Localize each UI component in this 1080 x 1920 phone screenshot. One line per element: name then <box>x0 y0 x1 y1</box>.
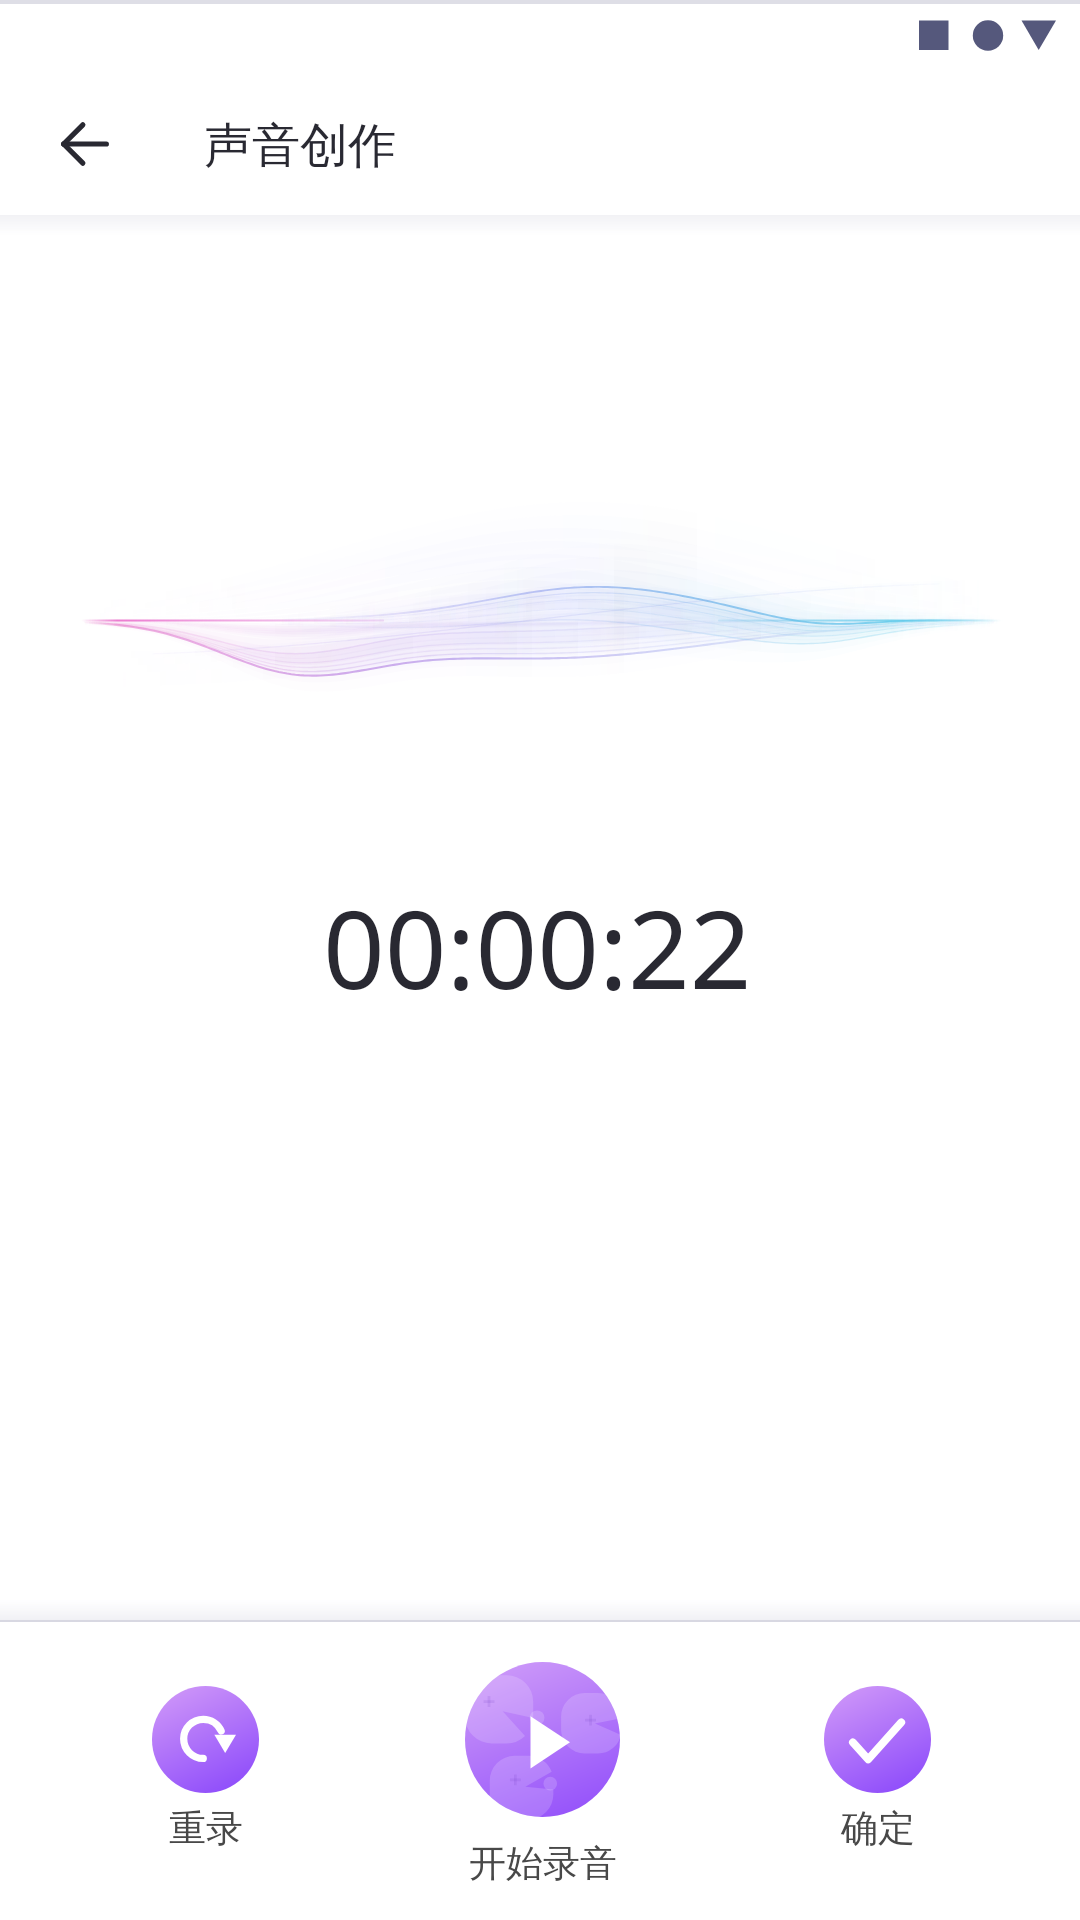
staticText: 确定 <box>841 1805 915 1852</box>
button[interactable]: Confirm <box>824 1686 931 1852</box>
staticText: 重录 <box>169 1805 243 1852</box>
button[interactable]: Start recording <box>465 1662 620 1887</box>
button[interactable]: Re-record <box>152 1686 259 1852</box>
staticText: 00:00:22 <box>323 874 752 1021</box>
staticText: 声音创作 <box>204 116 396 176</box>
button[interactable]: Back <box>40 99 129 188</box>
staticText: 开始录音 <box>469 1840 617 1887</box>
